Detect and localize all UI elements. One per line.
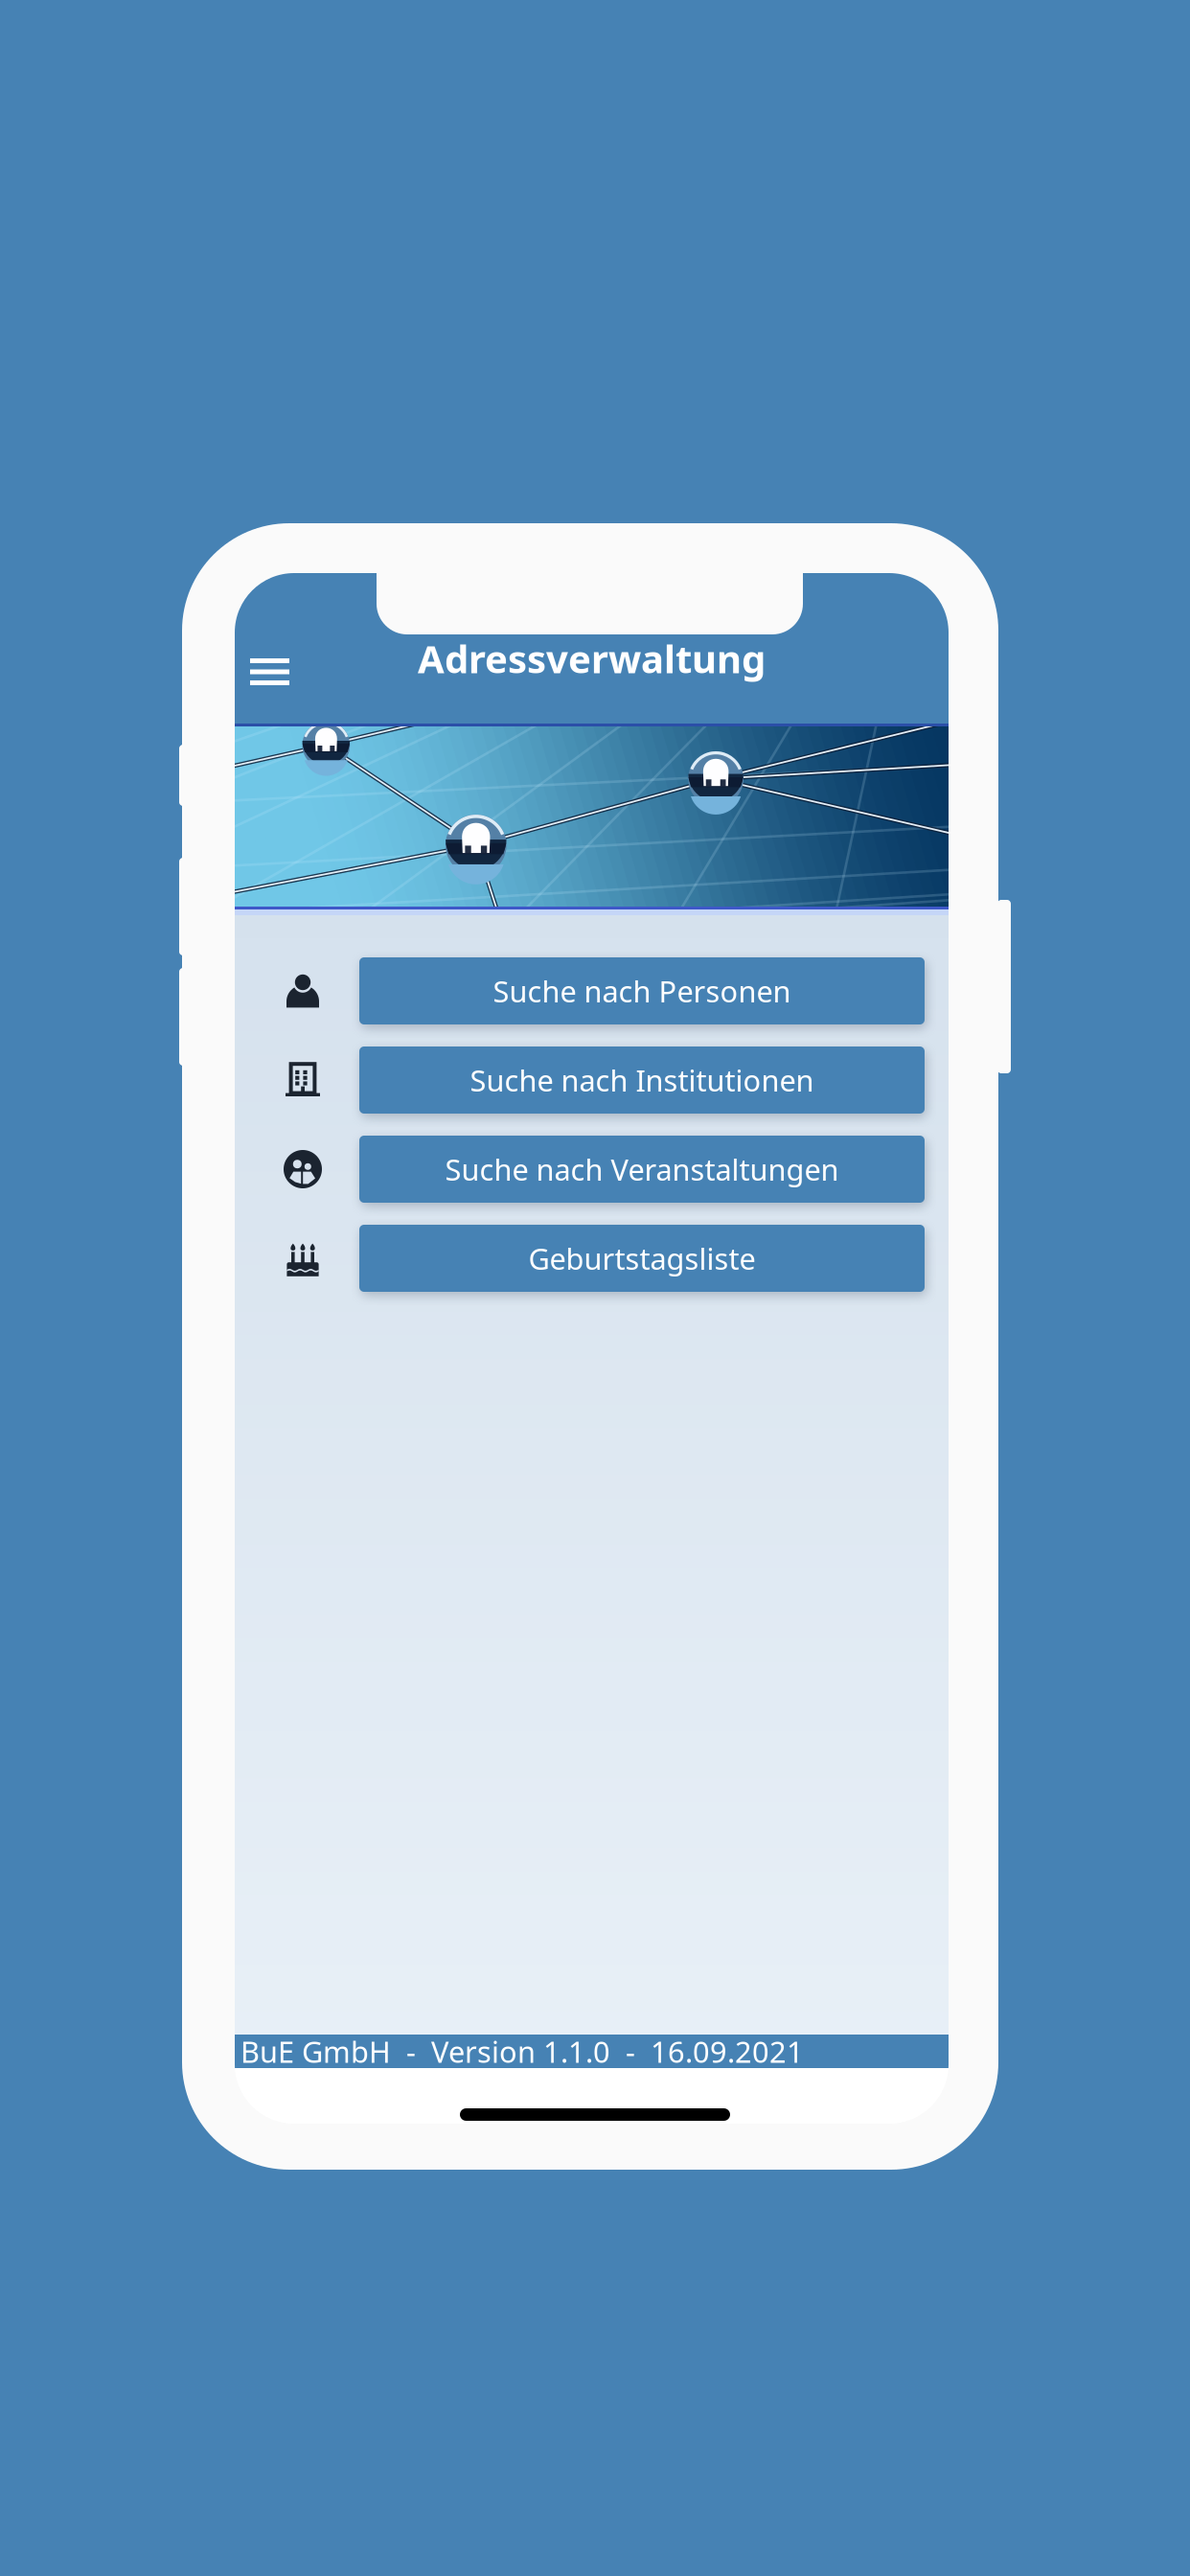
staticText: Suche nach Personen bbox=[493, 971, 791, 1010]
button[interactable]: Menü bbox=[229, 639, 309, 702]
staticText: Suche nach Institutionen bbox=[470, 1060, 814, 1099]
staticText: © BuE GmbH - Version 1.1.0 - 16.09.2021 bbox=[208, 2032, 804, 2071]
staticText: Geburtstagsliste bbox=[528, 1239, 755, 1278]
staticText: Adressverwaltung bbox=[418, 633, 766, 684]
button[interactable]: Suche nach Veranstaltungen bbox=[359, 1136, 925, 1203]
staticText: Suche nach Veranstaltungen bbox=[445, 1150, 839, 1189]
button[interactable]: Suche nach Personen bbox=[359, 957, 925, 1024]
button[interactable]: Geburtstagsliste bbox=[359, 1225, 925, 1292]
button[interactable]: Suche nach Institutionen bbox=[359, 1046, 925, 1114]
